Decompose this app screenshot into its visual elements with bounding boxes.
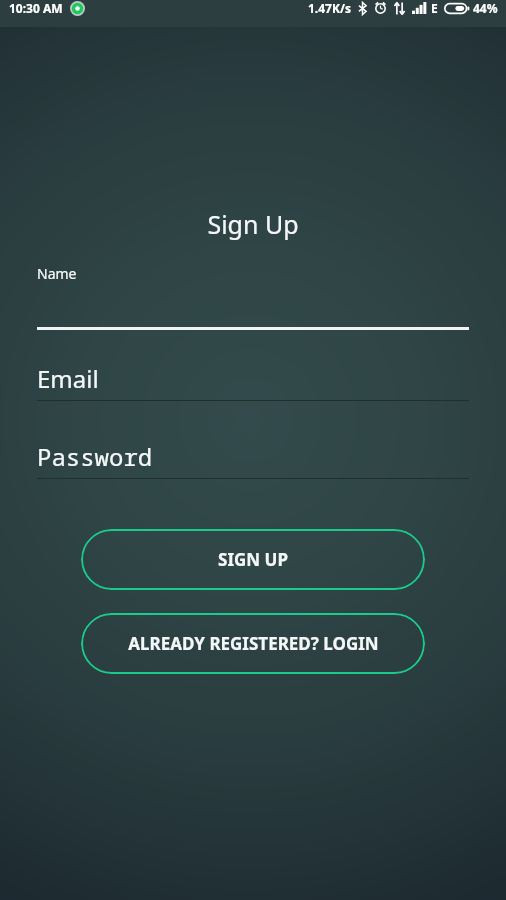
staticText: Sign Up [0, 207, 506, 241]
button[interactable]: ALREADY REGISTERED? LOGIN [81, 613, 425, 674]
button[interactable]: Email [37, 362, 469, 401]
staticText: E [431, 0, 438, 16]
button[interactable]: Password [37, 440, 469, 479]
staticText: SIGN UP [218, 548, 288, 571]
staticText: ALREADY REGISTERED? LOGIN [128, 632, 379, 655]
staticText: 44% [473, 0, 498, 16]
button[interactable]: SIGN UP [81, 529, 425, 590]
staticText: Name [37, 264, 77, 283]
staticText: Password [37, 440, 153, 473]
staticText: 10:30 AM [9, 0, 63, 16]
staticText: 1.47K/s [308, 0, 351, 16]
staticText: Email [37, 362, 99, 395]
button[interactable]: Name [37, 264, 469, 330]
